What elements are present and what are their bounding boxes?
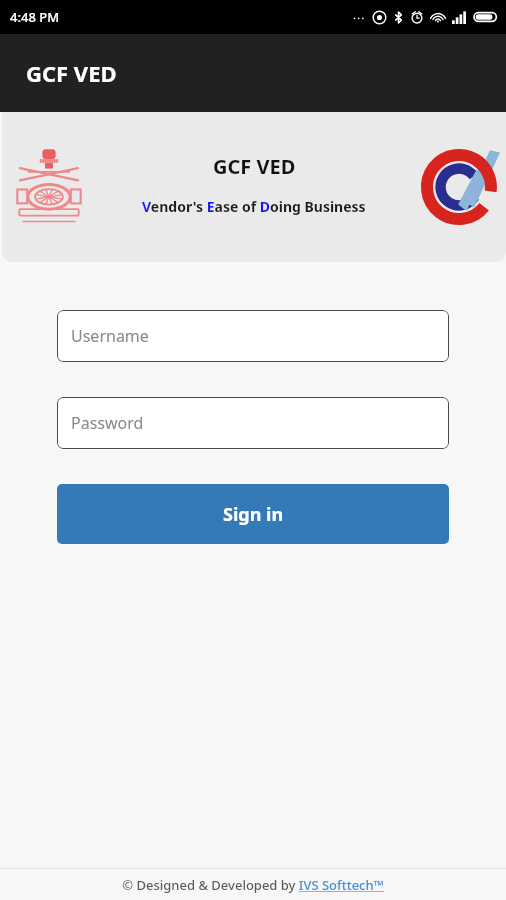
other: Ordnance Factory emblem xyxy=(16,146,82,228)
button[interactable]: Password xyxy=(57,397,449,449)
staticText: Vendor's Ease of Doing Business xyxy=(142,197,366,216)
staticText: GCF VED xyxy=(26,58,117,88)
button[interactable]: Username xyxy=(57,310,449,362)
staticText: 4:48 PM xyxy=(10,8,60,26)
button[interactable]: Sign in xyxy=(57,484,449,544)
staticText: Password xyxy=(71,412,144,434)
button[interactable]: © Designed & Developed by IVS Softtech™ xyxy=(122,876,384,894)
staticText: Username xyxy=(71,325,149,347)
staticText: GCF VED xyxy=(213,153,296,180)
staticText: Sign in xyxy=(223,502,284,527)
other: GCF logo xyxy=(422,147,506,227)
